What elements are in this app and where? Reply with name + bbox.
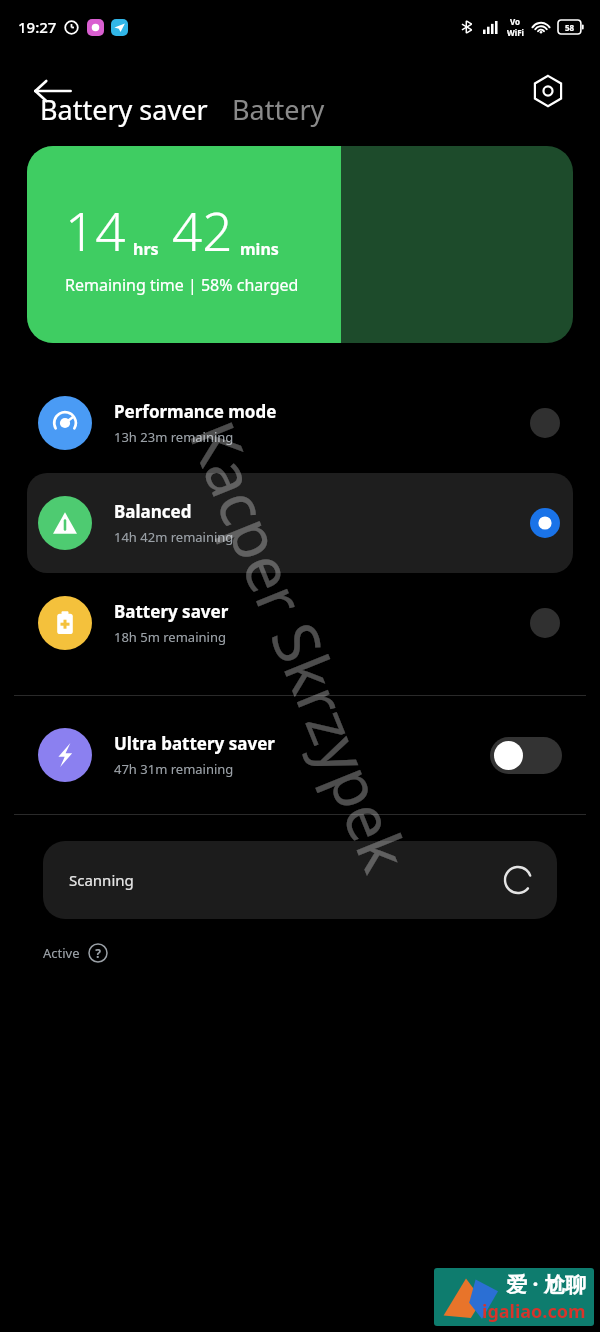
staticText: Remaining time | 58% charged <box>65 274 299 296</box>
button[interactable]: Battery <box>232 91 325 128</box>
staticText: 14 <box>65 194 126 266</box>
staticText: 58 <box>565 22 575 33</box>
button[interactable]: Ultra battery saver <box>27 718 573 792</box>
button[interactable]: Active <box>43 943 108 963</box>
staticText: Balanced <box>114 500 192 523</box>
staticText: Battery <box>232 91 325 128</box>
button[interactable]: Scanning <box>43 841 557 919</box>
button[interactable]: Balanced <box>27 473 573 573</box>
staticText: Battery saver <box>40 91 208 128</box>
button[interactable]: Help <box>88 943 108 963</box>
button[interactable]: Battery saver <box>40 91 208 128</box>
button[interactable]: Back <box>32 70 74 112</box>
button[interactable]: 14 <box>27 146 573 343</box>
staticText: 18h 5m remaining <box>114 628 226 646</box>
staticText: Active <box>43 944 80 962</box>
staticText: 14h 42m remaining <box>114 528 234 546</box>
button[interactable]: Ultra battery saver toggle <box>490 737 562 774</box>
staticText: Kacper Skrzypek <box>171 409 428 883</box>
staticText: Battery saver <box>114 600 229 623</box>
staticText: Ultra battery saver <box>114 732 275 755</box>
staticText: igaliao.com <box>482 1299 586 1324</box>
staticText: WiFi <box>507 27 524 38</box>
staticText: 42 <box>172 194 233 266</box>
staticText: 13h 23m remaining <box>114 428 234 446</box>
staticText: 47h 31m remaining <box>114 760 234 778</box>
button[interactable]: Battery saver <box>27 573 573 673</box>
staticText: Vo <box>510 16 521 27</box>
staticText: 19:27 <box>18 17 57 37</box>
staticText: mins <box>240 238 279 260</box>
staticText: Scanning <box>69 870 134 890</box>
staticText: 爱 · 尬聊 <box>506 1270 586 1299</box>
staticText: ? <box>95 945 101 961</box>
staticText: Performance mode <box>114 400 277 423</box>
staticText: hrs <box>133 238 159 260</box>
button[interactable]: Performance mode <box>27 373 573 473</box>
button[interactable]: Settings <box>530 73 566 109</box>
